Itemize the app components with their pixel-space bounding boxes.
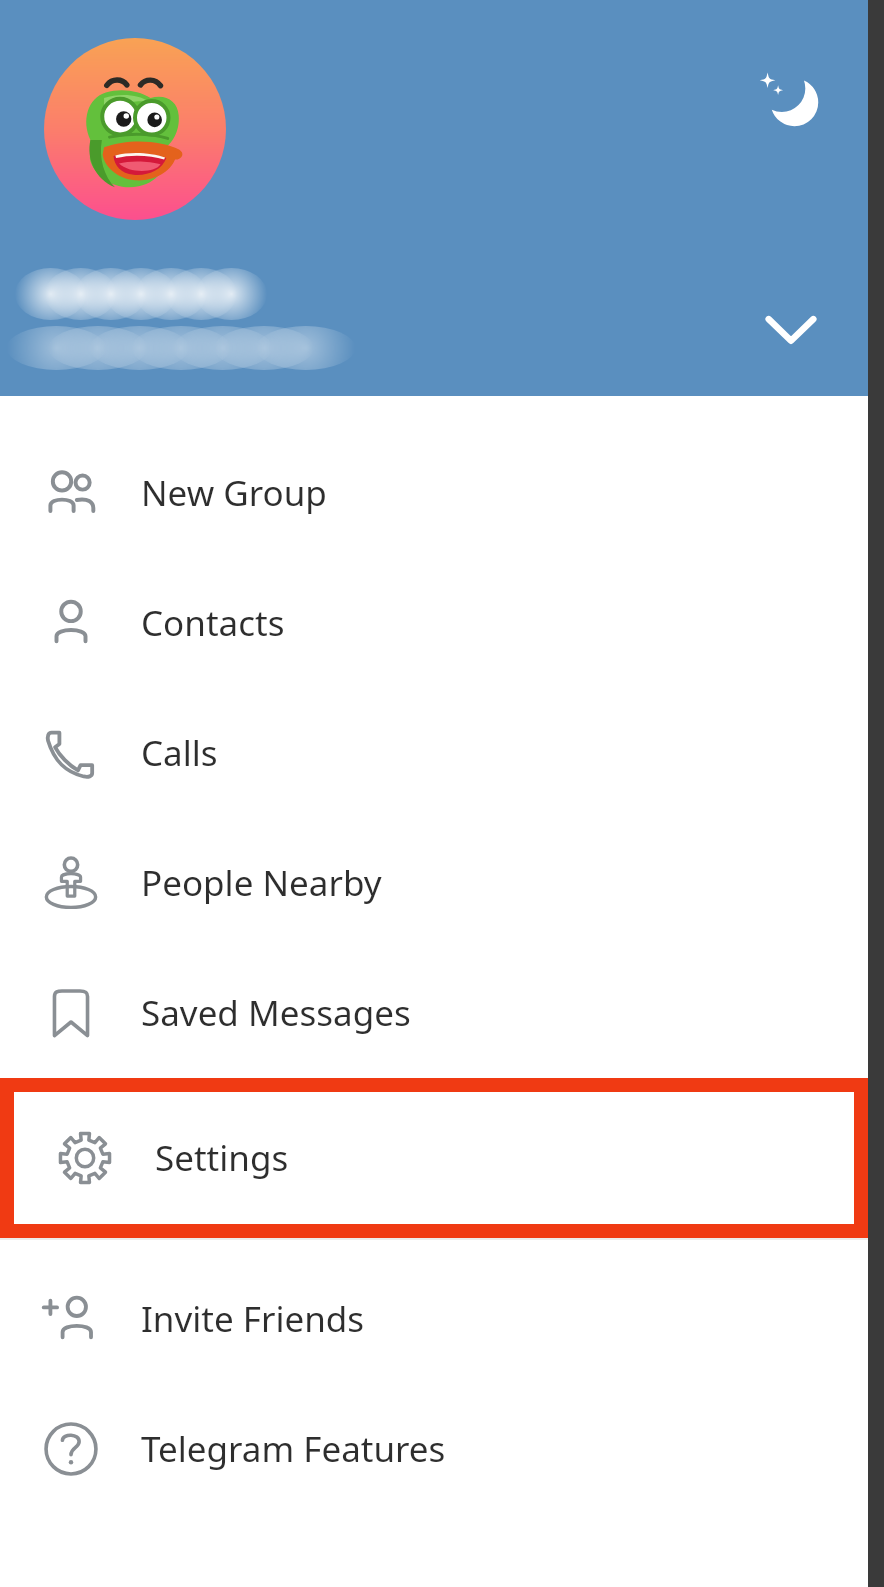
staticText: People Nearby: [141, 859, 382, 907]
button[interactable]: Expand accounts: [752, 290, 830, 368]
button[interactable]: Invite Friends: [0, 1254, 868, 1384]
button[interactable]: New Group: [0, 428, 868, 558]
staticText: Settings: [155, 1134, 289, 1182]
button[interactable]: Saved Messages: [0, 948, 868, 1078]
button[interactable]: Night mode: [748, 58, 830, 140]
staticText: Calls: [141, 729, 218, 777]
button[interactable]: People Nearby: [0, 818, 868, 948]
staticText: Saved Messages: [141, 989, 411, 1037]
staticText: Contacts: [141, 599, 285, 647]
button[interactable]: Profile photo: [44, 38, 226, 220]
button[interactable]: Contacts: [0, 558, 868, 688]
staticText: Invite Friends: [141, 1295, 365, 1343]
staticText: New Group: [141, 469, 327, 517]
button[interactable]: Telegram Features: [0, 1384, 868, 1514]
button[interactable]: Settings: [14, 1092, 854, 1224]
button[interactable]: Calls: [0, 688, 868, 818]
staticText: Telegram Features: [141, 1425, 446, 1473]
